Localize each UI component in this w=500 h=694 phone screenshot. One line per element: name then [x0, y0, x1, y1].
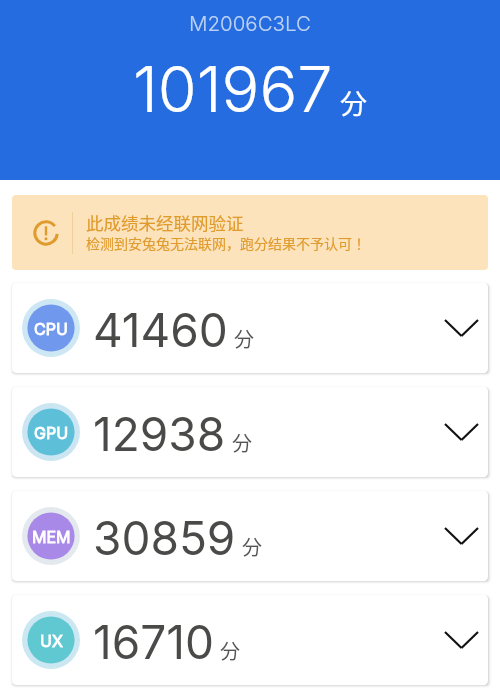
staticText: 分	[220, 636, 240, 665]
staticText: 30859	[93, 510, 236, 566]
button[interactable]: UX	[12, 595, 488, 685]
staticText: 分	[232, 428, 252, 457]
button[interactable]: Expand GPU	[437, 408, 485, 456]
button[interactable]: MEM	[12, 491, 488, 581]
staticText: 分	[340, 83, 367, 122]
button[interactable]: Expand MEM	[437, 512, 485, 560]
staticText: 分	[242, 532, 262, 561]
button[interactable]: Expand UX	[437, 616, 485, 664]
staticText: 12938	[93, 406, 226, 462]
staticText: 此成绩未经联网验证	[86, 210, 244, 235]
button[interactable]: CPU	[12, 283, 488, 373]
button[interactable]: 此成绩未经联网验证	[12, 195, 488, 270]
button[interactable]: GPU	[12, 387, 488, 477]
staticText: 16710	[93, 614, 214, 670]
staticText: 101967	[133, 51, 333, 127]
staticText: GPU	[34, 423, 69, 442]
staticText: MEM	[32, 527, 71, 546]
staticText: 41460	[93, 302, 228, 358]
staticText: 检测到安兔兔无法联网，跑分结果不予认可！	[86, 233, 366, 253]
staticText: M2006C3LC	[189, 11, 311, 36]
button[interactable]: Expand CPU	[437, 304, 485, 352]
staticText: 分	[234, 324, 254, 353]
staticText: CPU	[34, 319, 68, 338]
staticText: UX	[40, 631, 63, 650]
